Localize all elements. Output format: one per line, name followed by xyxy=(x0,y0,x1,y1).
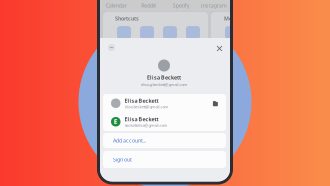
staticText: Elisa Beckett xyxy=(124,116,158,123)
button[interactable]: Elisa Beckett xyxy=(103,94,226,112)
staticText: beckettelisa@gmail.com xyxy=(124,123,167,128)
staticText: elisa.g.beckett@gmail.com xyxy=(140,82,187,87)
button[interactable]: Help xyxy=(106,42,117,53)
staticText: Add account... xyxy=(113,137,146,144)
staticText: elisa.beckett@gmail.com xyxy=(124,104,168,109)
staticText: Elisa Beckett xyxy=(124,97,158,104)
button[interactable]: E xyxy=(103,112,226,131)
button[interactable]: Close xyxy=(214,43,225,54)
staticText: Media xyxy=(224,15,240,22)
staticText: Instagram xyxy=(201,2,227,9)
staticText: Elisa Beckett xyxy=(147,74,181,81)
button[interactable]: Sign out xyxy=(103,151,226,168)
staticText: Shortcuts xyxy=(115,15,139,22)
staticText: Spotify xyxy=(173,2,190,9)
staticText: E xyxy=(114,117,118,126)
button[interactable]: Add account... xyxy=(103,133,226,148)
staticText: Sign out xyxy=(113,156,132,163)
staticText: Calendar xyxy=(106,2,127,9)
staticText: Reddit xyxy=(141,2,156,9)
